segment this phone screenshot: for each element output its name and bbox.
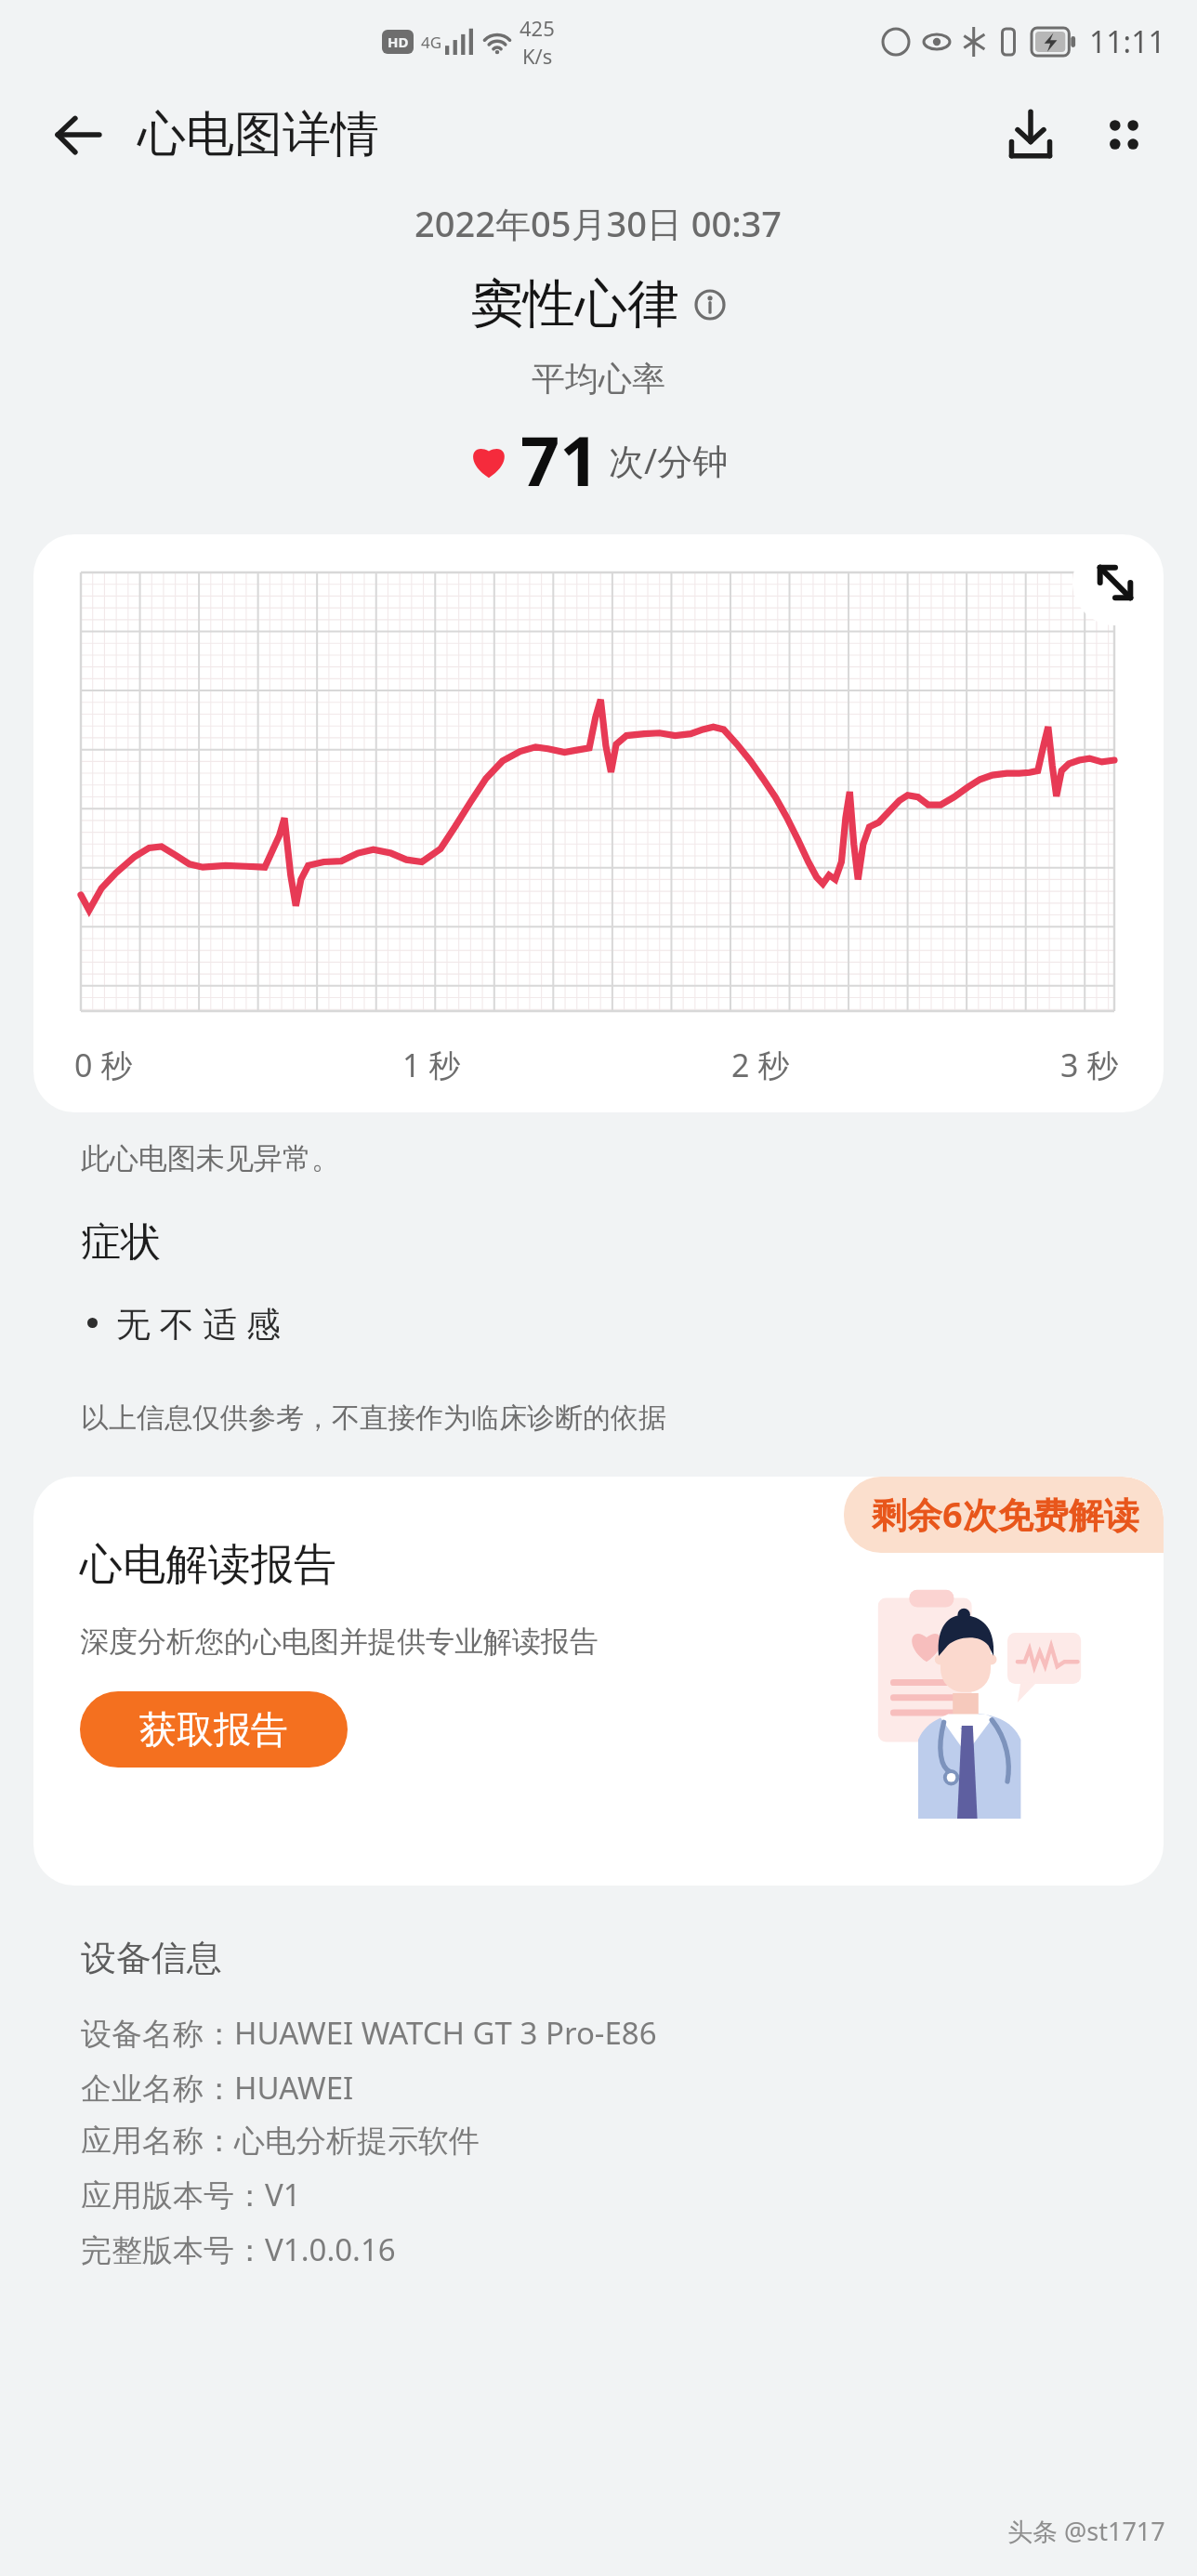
staticText: 2022年05月30日 00:37 xyxy=(414,199,783,247)
staticText: 11:11 xyxy=(1089,21,1165,62)
staticText: 以上信息仅供参考，不直接作为临床诊断的依据 xyxy=(81,1400,666,1436)
staticText: 0 秒 xyxy=(74,1044,133,1086)
staticText: 窦性心律 xyxy=(471,271,679,337)
staticText: 此心电图未见异常。 xyxy=(81,1140,340,1176)
staticText: 无 不 适 感 xyxy=(116,1299,281,1347)
button[interactable]: 窦性心律 xyxy=(471,271,726,337)
button[interactable]: Back xyxy=(41,98,115,172)
staticText: 应用版本号：V1 xyxy=(81,2174,301,2215)
staticText: 设备名称：HUAWEI WATCH GT 3 Pro-E86 xyxy=(81,2012,657,2054)
staticText: 4G xyxy=(421,32,442,53)
staticText: 完整版本号：V1.0.0.16 xyxy=(81,2228,396,2270)
staticText: 1 秒 xyxy=(402,1044,461,1086)
staticText: 症状 xyxy=(81,1217,161,1268)
button[interactable]: Expand chart xyxy=(1072,540,1158,625)
staticText: 应用名称：心电分析提示软件 xyxy=(81,2122,480,2161)
other: Info xyxy=(694,289,726,321)
staticText: 平均心率 xyxy=(532,358,665,400)
button[interactable]: 获取报告 xyxy=(80,1691,348,1768)
staticText: 425 xyxy=(520,14,555,42)
button[interactable]: More options xyxy=(1084,95,1164,175)
staticText: 企业名称：HUAWEI xyxy=(81,2067,354,2109)
staticText: 获取报告 xyxy=(139,1706,288,1753)
staticText: 2 秒 xyxy=(731,1044,790,1086)
staticText: 心电图详情 xyxy=(138,104,379,165)
staticText: 次/分钟 xyxy=(609,436,729,484)
staticText: 头条 @st1717 xyxy=(1007,2514,1165,2548)
button[interactable]: Download xyxy=(991,95,1071,175)
staticText: 心电解读报告 xyxy=(80,1538,336,1592)
staticText: 71 xyxy=(520,413,599,506)
staticText: K/s xyxy=(522,42,553,70)
staticText: HD xyxy=(388,33,409,51)
staticText: 3 秒 xyxy=(1060,1044,1119,1086)
staticText: 深度分析您的心电图并提供专业解读报告 xyxy=(80,1623,598,1660)
staticText: 剩余6次免费解读 xyxy=(872,1490,1139,1538)
staticText: 设备信息 xyxy=(81,1936,222,1980)
